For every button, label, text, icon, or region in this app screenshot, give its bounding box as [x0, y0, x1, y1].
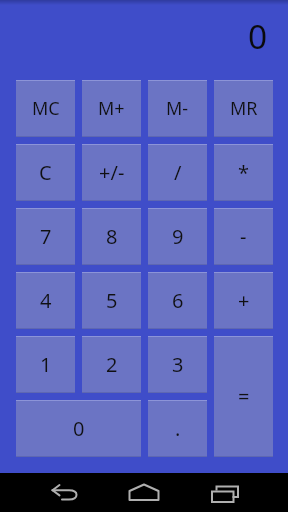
button[interactable]: 0 — [16, 400, 141, 457]
button[interactable]: 4 — [16, 272, 75, 329]
button[interactable]: M+ — [82, 80, 141, 137]
staticText: - — [240, 223, 247, 250]
button[interactable]: * — [214, 144, 273, 201]
staticText: = — [238, 383, 250, 410]
staticText: 3 — [172, 351, 184, 378]
staticText: M- — [166, 96, 189, 121]
button[interactable]: . — [148, 400, 207, 457]
button[interactable]: 6 — [148, 272, 207, 329]
staticText: 6 — [172, 287, 184, 314]
button[interactable]: 9 — [148, 208, 207, 265]
staticText: 7 — [40, 223, 52, 250]
staticText: 1 — [40, 351, 52, 378]
button[interactable]: 5 — [82, 272, 141, 329]
button[interactable]: MR — [214, 80, 273, 137]
button[interactable]: M- — [148, 80, 207, 137]
button[interactable]: 2 — [82, 336, 141, 393]
staticText: 8 — [106, 223, 118, 250]
button[interactable]: 1 — [16, 336, 75, 393]
staticText: 0 — [248, 13, 268, 59]
staticText: 9 — [172, 223, 184, 250]
button[interactable]: 3 — [148, 336, 207, 393]
staticText: * — [238, 159, 250, 186]
button[interactable] — [45, 473, 85, 512]
button[interactable]: - — [214, 208, 273, 265]
staticText: . — [175, 415, 181, 442]
staticText: + — [238, 287, 250, 314]
staticText: 0 — [73, 415, 85, 442]
button[interactable] — [202, 473, 242, 512]
button[interactable] — [124, 473, 164, 512]
button[interactable]: MC — [16, 80, 75, 137]
staticText: 5 — [106, 287, 118, 314]
button[interactable]: 7 — [16, 208, 75, 265]
staticText: MC — [32, 96, 60, 121]
staticText: C — [39, 159, 52, 186]
button[interactable]: +/- — [82, 144, 141, 201]
staticText: 2 — [106, 351, 118, 378]
button[interactable]: + — [214, 272, 273, 329]
button[interactable]: / — [148, 144, 207, 201]
staticText: MR — [230, 96, 258, 121]
button[interactable]: = — [214, 336, 273, 457]
button[interactable]: 8 — [82, 208, 141, 265]
staticText: +/- — [99, 159, 125, 186]
button[interactable]: C — [16, 144, 75, 201]
staticText: / — [174, 159, 182, 186]
staticText: 4 — [40, 287, 52, 314]
staticText: M+ — [98, 96, 125, 121]
